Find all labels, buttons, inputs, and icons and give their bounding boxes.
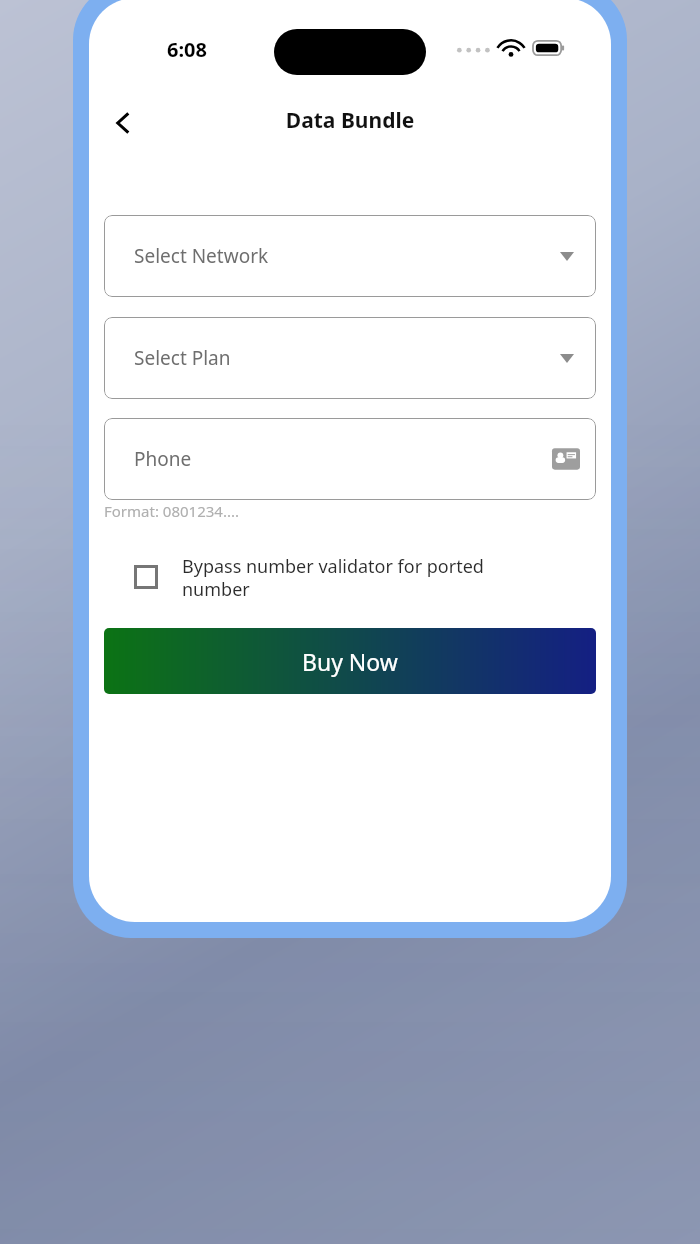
button[interactable]: Select Network bbox=[104, 215, 596, 297]
staticText: Buy Now bbox=[302, 646, 398, 677]
button[interactable]: Buy Now bbox=[104, 628, 596, 694]
button[interactable]: Bypass number validator for ported numbe… bbox=[104, 546, 596, 608]
staticText: Select Plan bbox=[134, 345, 231, 371]
staticText: Phone bbox=[134, 446, 192, 472]
staticText: 6:08 bbox=[155, 36, 219, 63]
staticText: Select Network bbox=[134, 243, 269, 269]
button[interactable]: Pick contact bbox=[551, 444, 581, 474]
button[interactable]: Select Plan bbox=[104, 317, 596, 399]
staticText: Data Bundle bbox=[89, 106, 611, 135]
button[interactable]: Phone bbox=[104, 418, 596, 500]
button[interactable]: Back bbox=[101, 100, 147, 146]
staticText: Format: 0801234.... bbox=[104, 501, 239, 521]
staticText: Bypass number validator for ported numbe… bbox=[182, 554, 512, 601]
